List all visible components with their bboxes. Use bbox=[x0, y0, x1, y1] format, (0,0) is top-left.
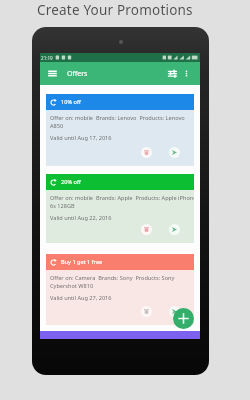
button[interactable]: Menu bbox=[46, 67, 59, 80]
staticText: Create Your Promotions bbox=[37, 1, 193, 19]
staticText: 10% off bbox=[61, 98, 81, 106]
staticText: Offer on: mobile Brands: Apple Products:… bbox=[50, 194, 194, 202]
staticText: 21:19 bbox=[41, 55, 53, 61]
staticText: 6s 128GB bbox=[50, 202, 75, 210]
staticText: Offer on: mobile Brands: Lenovo Products… bbox=[50, 114, 185, 122]
staticText: Offers bbox=[67, 69, 88, 79]
staticText: Cybershot W810 bbox=[50, 282, 94, 290]
staticText: Valid until Aug 27, 2016 bbox=[50, 294, 112, 302]
staticText: Valid until Aug 17, 2016 bbox=[50, 134, 112, 142]
button[interactable]: Filter bbox=[167, 68, 178, 79]
button[interactable]: Send bbox=[169, 224, 180, 235]
button[interactable]: Delete bbox=[141, 224, 152, 235]
button[interactable]: Delete bbox=[141, 306, 152, 317]
staticText: Buy 1 get 1 free bbox=[61, 258, 103, 266]
button[interactable]: Send bbox=[169, 306, 180, 317]
button[interactable]: Delete bbox=[141, 147, 152, 158]
staticText: A850 bbox=[50, 122, 64, 130]
button[interactable]: 20% off bbox=[46, 174, 194, 243]
staticText: Offer on: Camera Brands: Sony Products: … bbox=[50, 274, 175, 282]
button[interactable]: Send bbox=[169, 147, 180, 158]
staticText: Valid until Aug 22, 2016 bbox=[50, 214, 112, 222]
staticText: 20% off bbox=[61, 178, 81, 186]
button[interactable]: Add offer bbox=[173, 308, 194, 329]
button[interactable]: Buy 1 get 1 free bbox=[46, 254, 194, 325]
button[interactable]: More options bbox=[182, 69, 191, 78]
button[interactable]: 10% off bbox=[46, 94, 194, 166]
